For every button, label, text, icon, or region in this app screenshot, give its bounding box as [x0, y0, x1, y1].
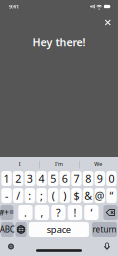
staticText: 4: [38, 171, 44, 186]
staticText: ,: [40, 205, 43, 220]
button[interactable]: 2: [13, 171, 23, 186]
button[interactable]: We: [79, 157, 118, 171]
button[interactable]: (: [48, 188, 58, 203]
button[interactable]: &: [83, 188, 93, 203]
staticText: I'm: [55, 160, 63, 168]
button[interactable]: “: [106, 188, 117, 203]
button[interactable]: .: [18, 205, 32, 220]
button[interactable]: !: [68, 205, 82, 220]
button[interactable]: I'm: [39, 157, 79, 171]
button[interactable]: @: [95, 188, 105, 203]
button[interactable]: #+=: [0, 205, 13, 220]
staticText: 3: [27, 171, 33, 186]
staticText: /: [16, 188, 20, 203]
staticText: :: [28, 188, 31, 203]
staticText: I: [19, 160, 21, 168]
button[interactable]: 1: [1, 171, 12, 186]
staticText: 6: [62, 171, 68, 186]
button[interactable]: :: [25, 188, 35, 203]
staticText: We: [94, 160, 102, 168]
button[interactable]: ?: [51, 205, 65, 220]
staticText: return: [92, 224, 116, 235]
button[interactable]: $: [71, 188, 82, 203]
staticText: &: [84, 188, 92, 203]
staticText: (: [52, 188, 55, 203]
button[interactable]: 9: [95, 171, 105, 186]
staticText: 8: [85, 171, 91, 186]
staticText: ?: [56, 205, 61, 220]
staticText: 0: [108, 171, 114, 186]
staticText: $: [73, 188, 79, 203]
button[interactable]: Delete: [103, 205, 118, 220]
button[interactable]: space: [29, 222, 89, 237]
staticText: ;: [40, 188, 43, 203]
staticText: .: [24, 205, 27, 220]
button[interactable]: ,: [35, 205, 49, 220]
staticText: 9: [97, 171, 103, 186]
button[interactable]: ABC: [1, 222, 14, 237]
button[interactable]: 3: [25, 171, 35, 186]
button[interactable]: ‘: [84, 205, 98, 220]
button[interactable]: return: [92, 222, 117, 237]
button[interactable]: Change keyboard: [4, 240, 18, 252]
staticText: ): [63, 188, 66, 203]
button[interactable]: I: [0, 157, 39, 171]
staticText: ‘: [90, 205, 92, 220]
staticText: 1: [4, 171, 10, 186]
button[interactable]: 6: [60, 171, 70, 186]
staticText: #+=: [0, 207, 14, 218]
staticText: Hey there!: [32, 35, 85, 49]
button[interactable]: Dictation: [100, 240, 114, 252]
button[interactable]: 7: [71, 171, 82, 186]
staticText: 2: [15, 171, 21, 186]
staticText: “: [109, 188, 113, 203]
button[interactable]: 0: [106, 171, 117, 186]
button[interactable]: Next keyboard: [15, 222, 27, 237]
staticText: -: [5, 188, 8, 203]
staticText: ABC: [0, 224, 15, 235]
button[interactable]: /: [13, 188, 23, 203]
button[interactable]: Close: [100, 14, 116, 30]
staticText: @: [95, 188, 105, 203]
button[interactable]: 4: [36, 171, 47, 186]
button[interactable]: 5: [48, 171, 58, 186]
button[interactable]: ;: [36, 188, 47, 203]
staticText: 5: [50, 171, 56, 186]
staticText: !: [73, 205, 76, 220]
staticText: 7: [73, 171, 79, 186]
button[interactable]: 8: [83, 171, 93, 186]
staticText: 9:41: [9, 3, 19, 10]
button[interactable]: -: [1, 188, 12, 203]
staticText: space: [47, 223, 71, 236]
button[interactable]: ): [60, 188, 70, 203]
